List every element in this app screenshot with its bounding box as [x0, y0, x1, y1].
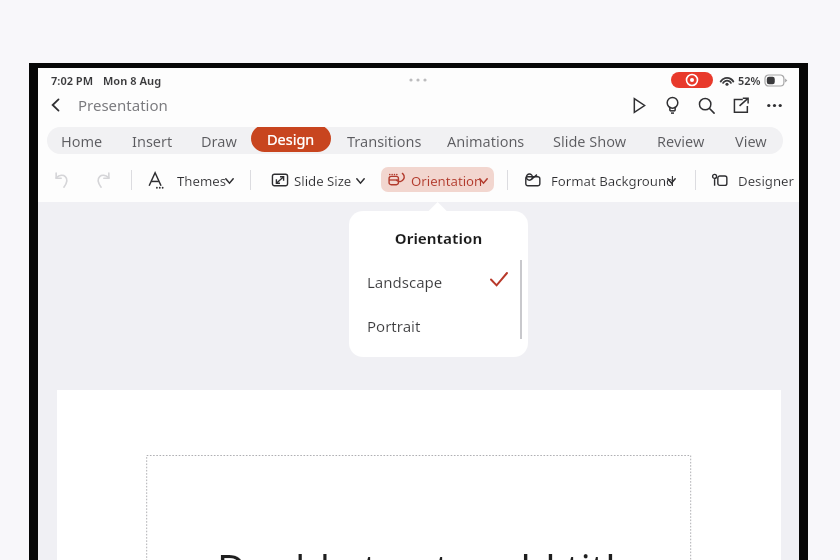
- button[interactable]: [382, 167, 495, 193]
- staticText: Animations: [447, 131, 525, 151]
- staticText: Landscape: [367, 272, 443, 292]
- staticText: Slide Show: [553, 131, 627, 151]
- button[interactable]: Redo: [89, 167, 115, 193]
- staticText: Home: [61, 131, 103, 151]
- button[interactable]: [381, 167, 494, 192]
- button[interactable]: Design: [251, 127, 331, 152]
- button[interactable]: Insert: [112, 127, 192, 154]
- button[interactable]: Back: [42, 91, 70, 119]
- staticText: Orientation: [349, 228, 528, 248]
- button[interactable]: Presentation: [78, 95, 168, 115]
- button[interactable]: View: [711, 127, 783, 154]
- button[interactable]: [265, 167, 373, 193]
- staticText: Transitions: [347, 131, 422, 151]
- staticText: Designer: [738, 172, 794, 190]
- button[interactable]: More options: [757, 88, 791, 122]
- button[interactable]: Review: [641, 127, 721, 154]
- button[interactable]: Slide Show: [550, 127, 630, 154]
- button[interactable]: Present: [621, 88, 655, 122]
- button[interactable]: Ideas: [655, 88, 689, 122]
- staticText: Format Background: [551, 172, 675, 190]
- button[interactable]: [705, 167, 793, 193]
- staticText: 7:02 PM: [51, 73, 94, 88]
- button[interactable]: Draw: [179, 127, 259, 154]
- button[interactable]: Search: [689, 88, 723, 122]
- staticText: View: [735, 131, 767, 151]
- button[interactable]: [518, 167, 683, 193]
- staticText: Double tap to add title: [217, 541, 639, 560]
- button[interactable]: Transitions: [344, 127, 424, 154]
- staticText: Review: [657, 131, 705, 151]
- staticText: Mon 8 Aug: [103, 73, 162, 88]
- button[interactable]: Home: [47, 127, 122, 154]
- staticText: Orientation: [411, 172, 483, 190]
- staticText: Portrait: [367, 316, 421, 336]
- staticText: Slide Size: [294, 172, 352, 190]
- button[interactable]: Undo: [50, 167, 76, 193]
- staticText: Themes: [177, 172, 227, 190]
- button[interactable]: [141, 167, 241, 193]
- button[interactable]: Share: [723, 88, 757, 122]
- staticText: 52%: [738, 73, 761, 88]
- staticText: Design: [267, 129, 315, 149]
- staticText: Draw: [201, 131, 237, 151]
- staticText: Insert: [132, 131, 173, 151]
- button[interactable]: Animations: [446, 127, 526, 154]
